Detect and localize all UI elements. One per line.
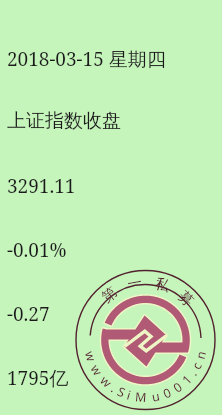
- staticText: 3291.11: [7, 173, 76, 199]
- staticText: 上证指数收盘: [7, 109, 121, 133]
- staticText: -0.27: [7, 301, 50, 327]
- staticText: 1795亿: [7, 365, 69, 391]
- staticText: -0.01%: [7, 237, 67, 263]
- staticText: 2018-03-15 星期四: [7, 46, 166, 72]
